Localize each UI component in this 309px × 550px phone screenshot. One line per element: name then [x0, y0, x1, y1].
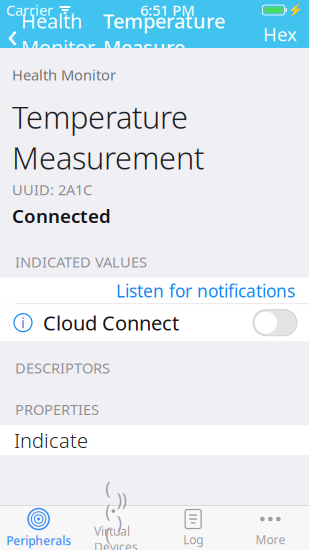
staticText: More	[255, 531, 285, 547]
button[interactable]: Peripherals	[0, 506, 77, 550]
staticText: Connected	[12, 203, 111, 228]
button[interactable]: Hex	[255, 20, 305, 48]
staticText: INDICATED VALUES	[15, 252, 147, 272]
button[interactable]: i	[0, 304, 309, 341]
staticText: ⚡	[288, 3, 303, 17]
staticText: Carrier	[6, 0, 53, 20]
button[interactable]: ‹	[0, 20, 99, 48]
staticText: Peripherals	[6, 532, 71, 548]
staticText: Virtual Devices	[94, 523, 138, 550]
staticText: (((	[105, 476, 110, 546]
staticText: Hex	[263, 22, 297, 46]
staticText: UUID: 2A1C	[12, 180, 92, 199]
staticText: DESCRIPTORS	[15, 358, 110, 378]
staticText: Cloud Connect	[43, 309, 179, 336]
button[interactable]: Log	[154, 506, 232, 550]
staticText: Temperature Measure...	[103, 7, 225, 60]
staticText: PROPERTIES	[15, 400, 99, 419]
staticText: 6:51 PM	[140, 0, 194, 20]
staticText: Health Monitor	[12, 65, 116, 84]
button[interactable]: (((	[77, 506, 154, 550]
staticText: Temperature Measurement	[12, 96, 204, 178]
staticText: ‹	[7, 11, 18, 57]
button[interactable]: More	[232, 506, 309, 550]
button[interactable]: Listen for notifications	[0, 278, 309, 304]
staticText: i	[21, 313, 25, 332]
staticText: Log	[183, 531, 203, 547]
staticText: )))	[117, 488, 127, 534]
staticText: Health Monitor	[21, 7, 95, 60]
staticText: Listen for notifications	[116, 279, 295, 302]
staticText: Indicate	[14, 427, 88, 453]
